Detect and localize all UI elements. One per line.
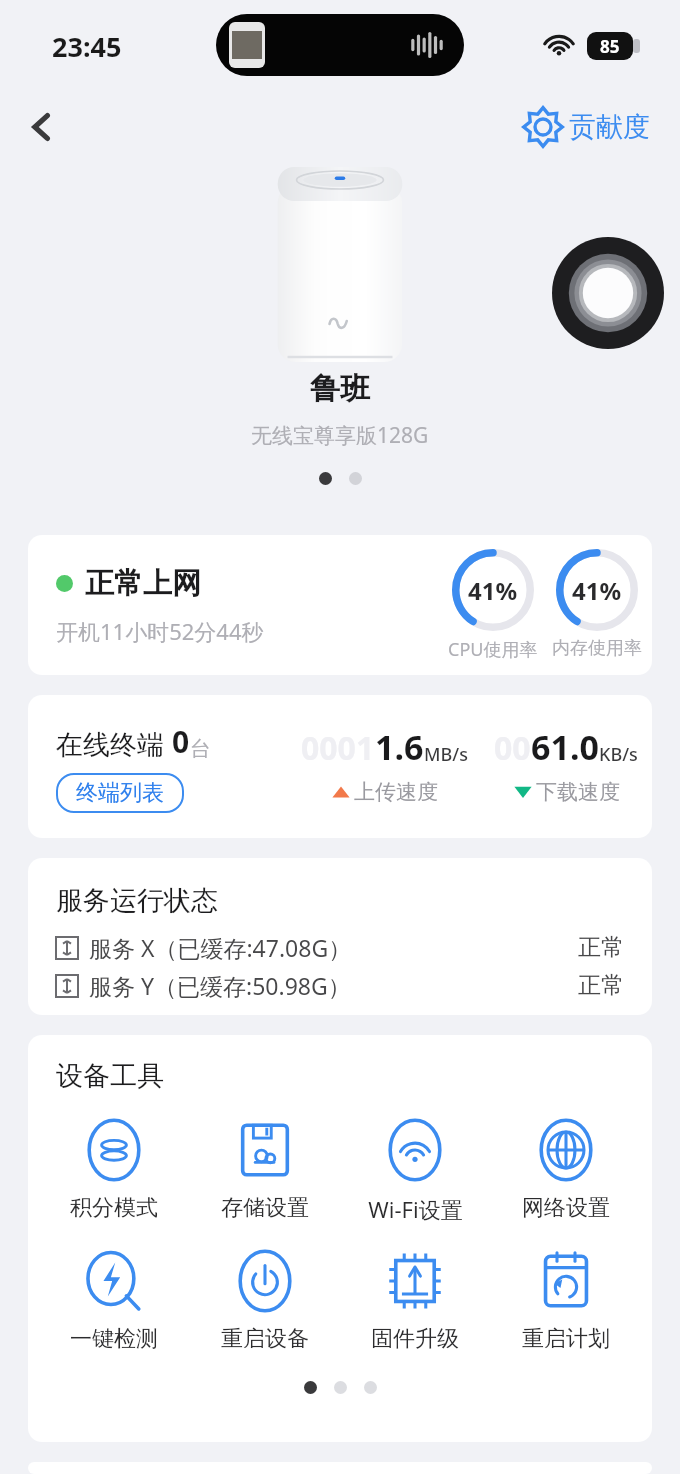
staticText: 0	[172, 721, 190, 762]
button[interactable]: 贡献度	[518, 102, 654, 152]
staticText: 鲁班	[310, 370, 370, 408]
staticText: 存储设置	[221, 1194, 309, 1222]
staticText: 服务运行状态	[56, 884, 218, 918]
staticText: 正常上网	[85, 565, 201, 602]
staticText: 重启计划	[522, 1325, 610, 1353]
staticText: KB/s	[599, 742, 638, 767]
button[interactable]: 网络设置	[501, 1117, 631, 1224]
staticText: 23:45	[52, 28, 122, 65]
staticText: 网络设置	[522, 1194, 610, 1222]
button[interactable]: 重启设备	[200, 1248, 330, 1355]
button[interactable]: Back	[14, 99, 70, 155]
staticText: 重启设备	[221, 1325, 309, 1353]
staticText: 服务 Y（已缓存:50.98G）	[89, 970, 351, 1001]
staticText: 台	[190, 736, 211, 762]
button[interactable]: 存储设置	[200, 1117, 330, 1224]
staticText: 内存使用率	[552, 637, 642, 660]
button[interactable]: 一键检测	[49, 1248, 179, 1355]
staticText: 正常	[578, 933, 624, 962]
staticText: 1.6	[375, 724, 424, 770]
staticText: 开机11小时52分44秒	[56, 616, 264, 646]
staticText: 贡献度	[569, 110, 650, 144]
staticText: 无线宝尊享版128G	[251, 421, 429, 450]
staticText: 终端列表	[76, 779, 164, 807]
staticText: 服务 X（已缓存:47.08G）	[89, 932, 352, 963]
button[interactable]: 服务 Y（已缓存:50.98G）	[56, 970, 624, 1001]
button[interactable]: 重启计划	[501, 1248, 631, 1355]
staticText: 41%	[468, 574, 518, 607]
button[interactable]: 终端列表	[56, 773, 184, 813]
staticText: 设备工具	[56, 1059, 164, 1093]
staticText: 积分模式	[70, 1194, 158, 1222]
staticText: 00	[494, 726, 531, 770]
staticText: 61.0	[531, 724, 599, 770]
button[interactable]: 固件升级	[350, 1248, 480, 1355]
staticText: 一键检测	[70, 1325, 158, 1353]
staticText: 上传速度	[354, 779, 438, 805]
staticText: 85	[600, 35, 620, 58]
staticText: MB/s	[424, 742, 468, 767]
staticText: 41%	[572, 574, 622, 607]
button[interactable]: 积分模式	[49, 1117, 179, 1224]
staticText: CPU使用率	[448, 637, 538, 662]
staticText: 0001	[301, 726, 375, 770]
button[interactable]: Wi-Fi设置	[350, 1117, 480, 1226]
staticText: 下载速度	[536, 779, 620, 805]
staticText: 固件升级	[371, 1325, 459, 1353]
staticText: Wi-Fi设置	[368, 1194, 463, 1224]
button[interactable]: 服务 X（已缓存:47.08G）	[56, 932, 624, 963]
staticText: 正常	[578, 971, 624, 1000]
staticText: 在线终端	[56, 725, 172, 762]
